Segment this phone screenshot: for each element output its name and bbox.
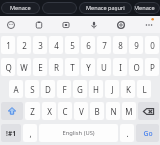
- staticText: V: [79, 106, 84, 117]
- button[interactable]: F: [57, 80, 71, 98]
- staticText: T: [70, 62, 75, 73]
- button[interactable]: S: [25, 80, 39, 98]
- button[interactable]: Menace: [1, 2, 40, 14]
- button[interactable]: Voice input: [87, 18, 101, 32]
- staticText: W: [20, 62, 28, 73]
- button[interactable]: H: [89, 80, 103, 98]
- staticText: English (US): [62, 129, 95, 137]
- button[interactable]: Settings: [114, 18, 128, 32]
- staticText: U: [101, 62, 107, 73]
- staticText: X: [47, 106, 52, 117]
- button[interactable]: 4: [49, 36, 63, 54]
- button[interactable]: Y: [81, 58, 95, 76]
- staticText: 6: [86, 40, 91, 51]
- button[interactable]: Backspace: [138, 102, 159, 120]
- button[interactable]: 8: [113, 36, 127, 54]
- staticText: L: [142, 84, 147, 95]
- staticText: M: [125, 106, 133, 117]
- staticText: Q: [5, 62, 12, 73]
- button[interactable]: G: [73, 80, 87, 98]
- button[interactable]: 6: [81, 36, 95, 54]
- button[interactable]: R: [49, 58, 63, 76]
- staticText: A: [13, 84, 19, 95]
- staticText: 5: [70, 40, 75, 51]
- button[interactable]: T: [65, 58, 79, 76]
- button[interactable]: I: [113, 58, 127, 76]
- staticText: F: [62, 84, 67, 95]
- staticText: 9: [134, 40, 139, 51]
- staticText: K: [126, 84, 131, 95]
- staticText: J: [111, 84, 114, 95]
- staticText: 7: [102, 40, 107, 51]
- button[interactable]: B: [90, 102, 104, 120]
- button[interactable]: A: [9, 80, 23, 98]
- staticText: N: [110, 106, 117, 117]
- staticText: R: [54, 62, 59, 73]
- staticText: Menace: [10, 4, 31, 12]
- button[interactable]: U: [97, 58, 111, 76]
- button[interactable]: W: [17, 58, 31, 76]
- staticText: Menace ac: [134, 4, 160, 12]
- button[interactable]: 9: [129, 36, 143, 54]
- button[interactable]: L: [137, 80, 151, 98]
- button[interactable]: English (US): [39, 124, 118, 142]
- staticText: 2: [22, 40, 27, 51]
- staticText: I: [119, 62, 122, 73]
- button[interactable]: Stickers: [59, 18, 73, 32]
- button[interactable]: Shift: [1, 102, 23, 120]
- staticText: 4: [54, 40, 59, 51]
- button[interactable]: 7: [97, 36, 111, 54]
- button[interactable]: Z: [25, 102, 40, 120]
- button[interactable]: D: [41, 80, 55, 98]
- button[interactable]: Q: [1, 58, 15, 76]
- staticText: B: [94, 106, 100, 117]
- button[interactable]: 5: [65, 36, 79, 54]
- staticText: Y: [86, 62, 91, 73]
- button[interactable]: 3: [33, 36, 47, 54]
- button[interactable]: [42, 2, 77, 14]
- button[interactable]: O: [129, 58, 143, 76]
- staticText: 3: [38, 40, 43, 51]
- staticText: !#1: [6, 129, 16, 138]
- staticText: Z: [30, 106, 35, 117]
- button[interactable]: J: [105, 80, 119, 98]
- staticText: S: [30, 84, 35, 95]
- button[interactable]: M: [122, 102, 136, 120]
- button[interactable]: X: [42, 102, 56, 120]
- staticText: E: [38, 62, 43, 73]
- button[interactable]: N: [106, 102, 120, 120]
- button[interactable]: Clipboard: [32, 18, 46, 32]
- staticText: 0: [150, 40, 155, 51]
- staticText: .: [126, 128, 129, 139]
- button[interactable]: K: [121, 80, 135, 98]
- button[interactable]: 1: [1, 36, 15, 54]
- button[interactable]: Menace ac: [134, 2, 160, 14]
- staticText: D: [45, 84, 51, 95]
- staticText: O: [133, 62, 140, 73]
- button[interactable]: Emoji: [4, 18, 18, 32]
- staticText: P: [150, 62, 155, 73]
- button[interactable]: Menace pașuri: [79, 2, 132, 14]
- staticText: C: [62, 106, 68, 117]
- button[interactable]: C: [58, 102, 72, 120]
- button[interactable]: V: [74, 102, 88, 120]
- button[interactable]: ,: [23, 124, 37, 142]
- button[interactable]: 0: [145, 36, 159, 54]
- staticText: 1: [6, 40, 11, 51]
- staticText: Menace pașuri: [86, 4, 125, 12]
- staticText: Go: [143, 129, 153, 138]
- button[interactable]: 2: [17, 36, 31, 54]
- staticText: H: [93, 84, 99, 95]
- staticText: G: [77, 84, 83, 95]
- button[interactable]: Go: [136, 124, 159, 142]
- button[interactable]: .: [120, 124, 134, 142]
- button[interactable]: More options: [142, 18, 156, 32]
- button[interactable]: P: [145, 58, 159, 76]
- button[interactable]: !#1: [1, 124, 21, 142]
- staticText: ,: [29, 128, 32, 139]
- staticText: 8: [118, 40, 123, 51]
- button[interactable]: E: [33, 58, 47, 76]
